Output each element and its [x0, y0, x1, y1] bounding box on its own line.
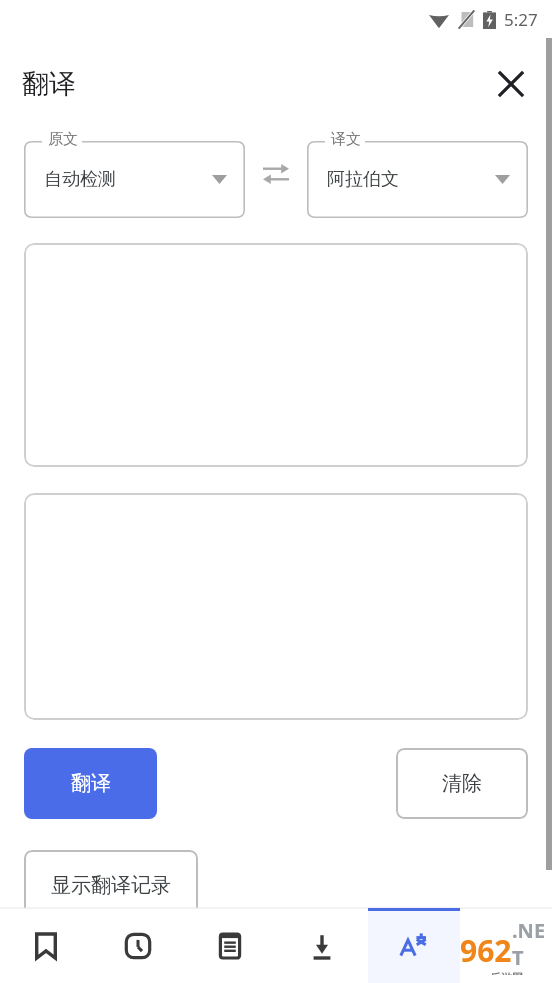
- button[interactable]: 显示翻译记录: [24, 850, 198, 921]
- button[interactable]: 交换语言: [245, 143, 307, 205]
- button[interactable]: 原文: [24, 130, 245, 218]
- staticText: 翻译: [22, 67, 76, 101]
- staticText: .NET: [512, 917, 552, 971]
- button[interactable]: 文档: [184, 908, 276, 983]
- button[interactable]: 译文: [307, 130, 528, 218]
- staticText: 翻译: [71, 771, 111, 796]
- staticText: 原文: [48, 130, 78, 149]
- staticText: 5:27: [504, 8, 538, 31]
- staticText: 译文: [331, 130, 361, 149]
- staticText: 清除: [442, 771, 482, 796]
- button[interactable]: 翻译: [24, 748, 157, 819]
- staticText: 阿拉伯文: [327, 168, 495, 191]
- button[interactable]: 下载: [276, 908, 368, 983]
- button[interactable]: 收藏: [0, 908, 92, 983]
- button[interactable]: 历史: [92, 908, 184, 983]
- staticText: 显示翻译记录: [51, 873, 171, 898]
- button[interactable]: 清除: [396, 748, 528, 819]
- staticText: 自动检测: [44, 168, 212, 191]
- button[interactable]: [24, 243, 528, 467]
- button[interactable]: 关闭: [488, 61, 534, 107]
- staticText: 乐游网: [490, 971, 523, 975]
- button[interactable]: [24, 493, 528, 720]
- staticText: 962: [460, 930, 512, 971]
- button[interactable]: 翻译: [368, 908, 460, 983]
